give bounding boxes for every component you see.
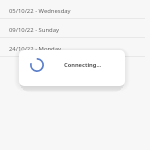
- button[interactable]: Loading: [19, 50, 125, 86]
- button[interactable]: 24/10/22 - Monday: [0, 38, 150, 57]
- staticText: 24/10/22 - Monday: [9, 45, 62, 53]
- staticText: Connecting...: [64, 61, 102, 69]
- button[interactable]: 05/10/22 - Wednesday: [0, 0, 150, 19]
- staticText: 09/10/22 - Sunday: [9, 26, 60, 34]
- other: Loading: [30, 58, 44, 72]
- staticText: 05/10/22 - Wednesday: [9, 7, 71, 15]
- button[interactable]: 09/10/22 - Sunday: [0, 19, 150, 38]
